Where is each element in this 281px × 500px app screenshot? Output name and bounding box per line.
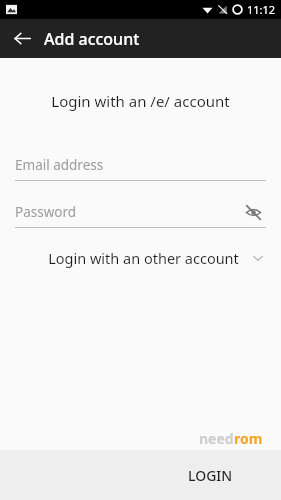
button[interactable]: Login with an other account	[15, 248, 266, 268]
staticText: Password	[15, 203, 77, 221]
button[interactable]: Back	[0, 19, 44, 58]
staticText: LOGIN	[188, 466, 233, 485]
staticText: Add account	[44, 28, 140, 50]
button[interactable]: LOGIN	[170, 456, 251, 495]
staticText: 11:12	[247, 2, 276, 17]
button[interactable]: Password	[15, 197, 266, 227]
staticText: Login with an /e/ account	[15, 91, 266, 111]
staticText: rom	[234, 429, 263, 448]
staticText: Login with an other account	[37, 248, 250, 268]
staticText: Email address	[15, 156, 104, 174]
button[interactable]: Email address	[15, 150, 266, 180]
staticText: need	[199, 429, 234, 448]
button[interactable]: Show password	[240, 199, 266, 225]
